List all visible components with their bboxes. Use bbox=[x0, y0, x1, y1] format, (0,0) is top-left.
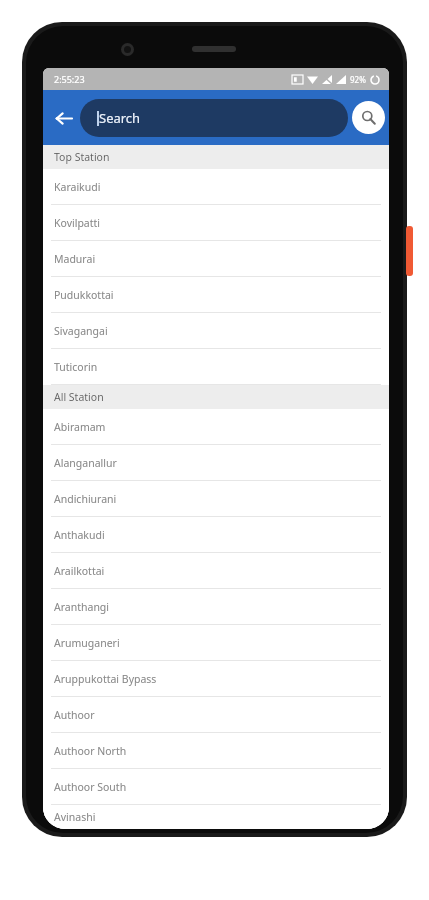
staticText: Tuticorin bbox=[54, 360, 98, 374]
staticText: Pudukkottai bbox=[54, 288, 114, 302]
button[interactable]: Authoor North bbox=[43, 733, 389, 769]
button[interactable]: Karaikudi bbox=[43, 169, 389, 205]
button[interactable]: Arailkottai bbox=[43, 553, 389, 589]
button[interactable]: Arumuganeri bbox=[43, 625, 389, 661]
button[interactable]: Authoor bbox=[43, 697, 389, 733]
staticText: Authoor North bbox=[54, 744, 127, 758]
staticText: Arumuganeri bbox=[54, 636, 120, 650]
staticText: Abiramam bbox=[54, 420, 106, 434]
button[interactable]: Alanganallur bbox=[43, 445, 389, 481]
staticText: Aruppukottai Bypass bbox=[54, 672, 157, 686]
button[interactable]: Search bbox=[352, 101, 385, 134]
staticText: Alanganallur bbox=[54, 456, 117, 470]
button[interactable]: Aruppukottai Bypass bbox=[43, 661, 389, 697]
staticText: 2:55:23 bbox=[54, 73, 85, 85]
button[interactable]: Avinashi bbox=[43, 805, 389, 829]
staticText: Andichiurani bbox=[54, 492, 117, 506]
staticText: Arailkottai bbox=[54, 564, 105, 578]
staticText: All Station bbox=[54, 390, 104, 404]
button[interactable]: Authoor South bbox=[43, 769, 389, 805]
button[interactable]: Kovilpatti bbox=[43, 205, 389, 241]
button[interactable]: Tuticorin bbox=[43, 349, 389, 385]
button[interactable]: Search bbox=[80, 99, 348, 137]
staticText: Aranthangi bbox=[54, 600, 110, 614]
staticText: Anthakudi bbox=[54, 528, 105, 542]
staticText: Authoor South bbox=[54, 780, 127, 794]
staticText: Karaikudi bbox=[54, 180, 101, 194]
staticText: Sivagangai bbox=[54, 324, 108, 338]
button[interactable]: Sivagangai bbox=[43, 313, 389, 349]
staticText: Avinashi bbox=[54, 810, 96, 824]
button[interactable]: Anthakudi bbox=[43, 517, 389, 553]
button[interactable]: Back bbox=[48, 103, 78, 133]
staticText: 92% bbox=[350, 74, 366, 85]
button[interactable]: Pudukkottai bbox=[43, 277, 389, 313]
staticText: Top Station bbox=[54, 150, 110, 164]
staticText: Search bbox=[99, 109, 141, 127]
button[interactable]: Madurai bbox=[43, 241, 389, 277]
staticText: Authoor bbox=[54, 708, 95, 722]
button[interactable]: Andichiurani bbox=[43, 481, 389, 517]
staticText: Kovilpatti bbox=[54, 216, 101, 230]
button[interactable]: Abiramam bbox=[43, 409, 389, 445]
staticText: Madurai bbox=[54, 252, 96, 266]
button[interactable]: Aranthangi bbox=[43, 589, 389, 625]
